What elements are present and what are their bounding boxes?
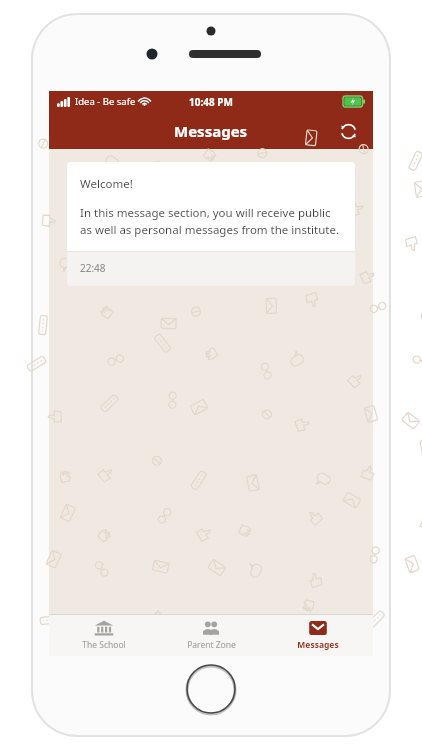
staticText: 22:48 (80, 261, 106, 275)
staticText: Idea - Be safe (75, 95, 136, 108)
staticText: The School (82, 639, 126, 651)
button[interactable]: Welcome! (67, 162, 355, 286)
staticText: Messages (297, 639, 339, 651)
button[interactable]: The School (52, 615, 156, 656)
staticText: 10:48 PM (189, 95, 233, 109)
button[interactable]: Refresh (333, 116, 363, 146)
button[interactable]: Parent Zone (159, 615, 263, 656)
staticText: Messages (174, 121, 248, 141)
staticText: Welcome! (80, 176, 133, 192)
staticText: Parent Zone (187, 639, 236, 651)
staticText: In this message section, you will receiv… (80, 205, 342, 237)
button[interactable]: Messages (266, 615, 370, 656)
